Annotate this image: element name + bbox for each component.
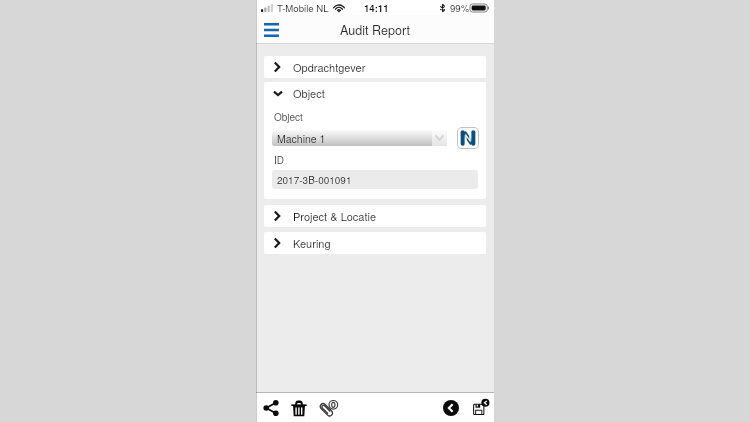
button[interactable]: Delete [288, 395, 310, 421]
button[interactable]: 2017-3B-001091 [272, 170, 478, 189]
button[interactable]: Menu [259, 18, 283, 42]
button[interactable]: NFC [457, 127, 479, 149]
button[interactable]: Keuring [264, 232, 486, 254]
button[interactable]: Project & Locatie [264, 205, 486, 227]
staticText: ID [274, 153, 284, 167]
button[interactable]: Opdrachtgever [264, 56, 486, 78]
staticText: 14:11 [364, 1, 389, 15]
staticText: T-Mobile NL [277, 1, 329, 15]
button[interactable]: Machine 1 [272, 130, 447, 146]
staticText: Project & Locatie [293, 208, 377, 224]
button[interactable]: Back [441, 395, 463, 421]
button[interactable]: Attachments [316, 395, 340, 421]
staticText: 2017-3B-001091 [277, 173, 352, 187]
staticText: Object [274, 110, 303, 124]
staticText: Keuring [293, 235, 331, 251]
staticText: 99% [450, 1, 470, 15]
staticText: Object [293, 85, 325, 101]
staticText: Audit Report [340, 21, 411, 39]
staticText: Machine 1 [277, 131, 326, 146]
button[interactable]: Save and go back [469, 395, 491, 421]
button[interactable]: Share [260, 395, 282, 421]
staticText: Opdrachtgever [293, 59, 366, 75]
